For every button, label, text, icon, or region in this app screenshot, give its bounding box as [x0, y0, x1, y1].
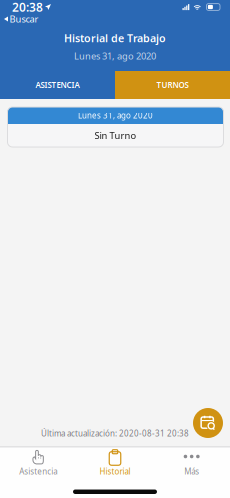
staticText: TURNOS [156, 80, 188, 90]
staticText: Historial [99, 466, 130, 477]
staticText: ASISTENCIA [35, 80, 79, 90]
staticText: Lunes 31, ago 2020 [74, 50, 156, 62]
staticText: Lunes 31, ago 2020 [78, 110, 153, 121]
staticText: Buscar [9, 13, 38, 25]
staticText: Asistencia [19, 466, 57, 477]
staticText: Más [184, 466, 199, 477]
staticText: Sin Turno [94, 129, 136, 142]
staticText: 20:38 [12, 0, 43, 15]
button[interactable]: Historial [77, 447, 153, 480]
button[interactable]: TURNOS [115, 71, 230, 99]
button[interactable]: Asistencia [0, 447, 77, 480]
staticText: Historial de Trabajo [64, 31, 166, 45]
staticText: Última actualización: 2020-08-31 20:38 [41, 428, 189, 439]
button[interactable]: ASISTENCIA [0, 71, 115, 99]
button[interactable]: Más [153, 447, 230, 480]
button[interactable]: Buscar por fecha [193, 408, 223, 438]
